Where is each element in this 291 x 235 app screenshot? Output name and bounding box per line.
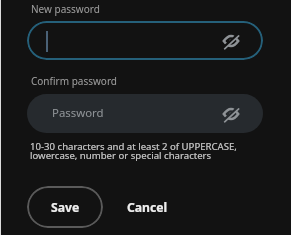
staticText: Confirm password	[31, 74, 117, 88]
button[interactable]: Show password	[223, 33, 239, 49]
button[interactable]: Save	[27, 186, 103, 228]
staticText: Password	[52, 105, 104, 121]
button[interactable]: Cancel	[119, 186, 176, 228]
staticText: 10-30 characters and at least 2 of UPPER…	[30, 140, 237, 162]
staticText: Cancel	[127, 199, 168, 216]
staticText: Save	[51, 199, 80, 216]
button[interactable]: Password	[27, 94, 263, 133]
staticText: New password	[31, 2, 100, 16]
button[interactable]: Show password	[27, 21, 263, 60]
button[interactable]: Show password	[223, 106, 239, 122]
